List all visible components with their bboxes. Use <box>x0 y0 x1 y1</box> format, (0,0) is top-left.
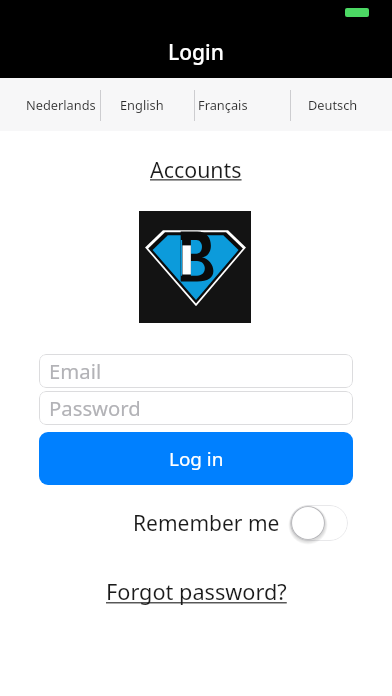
staticText: Français <box>198 96 248 113</box>
staticText: Forgot password? <box>106 577 287 607</box>
button[interactable]: Nederlands <box>16 78 106 131</box>
button[interactable]: Remember me toggle <box>290 505 348 541</box>
staticText: Login <box>168 38 224 67</box>
staticText: Log in <box>169 446 224 472</box>
staticText: Password <box>49 394 141 422</box>
button[interactable]: Log in <box>39 432 353 485</box>
button[interactable]: Password <box>39 391 353 425</box>
button[interactable]: Email <box>39 354 353 388</box>
staticText: Email <box>49 357 102 385</box>
button[interactable]: Français <box>188 78 258 131</box>
staticText: Nederlands <box>26 96 96 113</box>
staticText: English <box>120 96 164 113</box>
staticText: Accounts <box>150 155 242 184</box>
button[interactable]: Accounts <box>150 155 242 184</box>
button[interactable]: Forgot password? <box>106 577 287 607</box>
staticText: Deutsch <box>308 96 358 113</box>
button[interactable]: English <box>112 78 172 131</box>
button[interactable]: Deutsch <box>300 78 366 131</box>
staticText: Remember me <box>133 509 280 538</box>
